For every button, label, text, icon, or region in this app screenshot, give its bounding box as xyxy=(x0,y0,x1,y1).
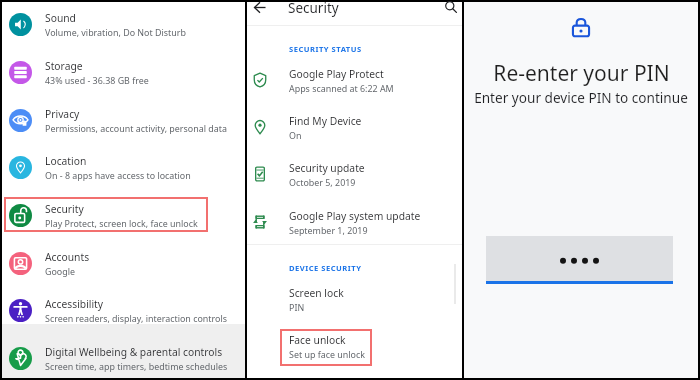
button[interactable]: Storage xyxy=(2,49,245,95)
staticText: Digital Wellbeing & parental controls xyxy=(45,345,223,359)
staticText: Accounts xyxy=(45,250,90,264)
staticText: Face unlock xyxy=(289,333,346,347)
staticText: PIN xyxy=(289,301,305,313)
staticText: September 1, 2019 xyxy=(289,224,368,236)
staticText: Volume, vibration, Do Not Disturb xyxy=(45,26,186,38)
staticText: Find My Device xyxy=(289,114,362,128)
staticText: Location xyxy=(45,154,87,168)
staticText: Storage xyxy=(45,59,83,73)
staticText: DEVICE SECURITY xyxy=(289,263,362,273)
button[interactable]: Search xyxy=(439,0,462,16)
staticText: Apps scanned at 6:22 AM xyxy=(289,82,394,94)
button[interactable]: Security update xyxy=(247,155,462,193)
staticText: October 5, 2019 xyxy=(289,176,356,188)
staticText: Accessibility xyxy=(45,297,104,311)
button[interactable]: Google Play Protect xyxy=(247,61,462,99)
button[interactable]: Find My Device xyxy=(247,108,462,146)
button[interactable]: Google Play system update xyxy=(247,203,462,241)
staticText: Screen time, app timers, bedtime schedul… xyxy=(45,360,228,372)
button[interactable]: Privacy xyxy=(2,97,245,143)
staticText: Screen readers, display, interaction con… xyxy=(45,312,227,324)
staticText: Screen lock xyxy=(289,286,344,300)
staticText: Set up face unlock xyxy=(289,348,366,360)
button[interactable]: Accounts xyxy=(2,240,245,286)
staticText: On - 8 apps have access to location xyxy=(45,169,191,181)
button[interactable]: Location xyxy=(2,144,245,190)
staticText: SECURITY STATUS xyxy=(289,44,362,54)
staticText: Enter your device PIN to continue xyxy=(474,88,688,107)
staticText: Security xyxy=(45,202,84,216)
button[interactable]: Security xyxy=(2,192,245,238)
staticText: Sound xyxy=(45,11,76,25)
button[interactable]: Sound xyxy=(2,1,245,47)
button[interactable]: Digital Wellbeing & parental controls xyxy=(2,335,245,380)
staticText: Privacy xyxy=(45,107,80,121)
button[interactable]: Face unlock xyxy=(282,327,412,365)
staticText: Re-enter your PIN xyxy=(493,59,670,88)
staticText: Google xyxy=(45,265,76,277)
button[interactable]: Back xyxy=(247,0,273,16)
button[interactable]: PIN entry field xyxy=(486,236,673,281)
button[interactable]: Security xyxy=(288,0,339,17)
staticText: Play Protect, screen lock, face unlock xyxy=(45,217,198,229)
button[interactable]: Accessibility xyxy=(2,287,245,333)
staticText: Google Play Protect xyxy=(289,67,384,81)
staticText: Security update xyxy=(289,161,365,175)
staticText: On xyxy=(289,129,302,141)
staticText: Google Play system update xyxy=(289,209,421,223)
staticText: Permissions, account activity, personal … xyxy=(45,122,227,134)
button[interactable]: Screen lock xyxy=(282,280,412,318)
staticText: Security xyxy=(288,0,339,17)
staticText: 43% used - 36.38 GB free xyxy=(45,74,149,86)
